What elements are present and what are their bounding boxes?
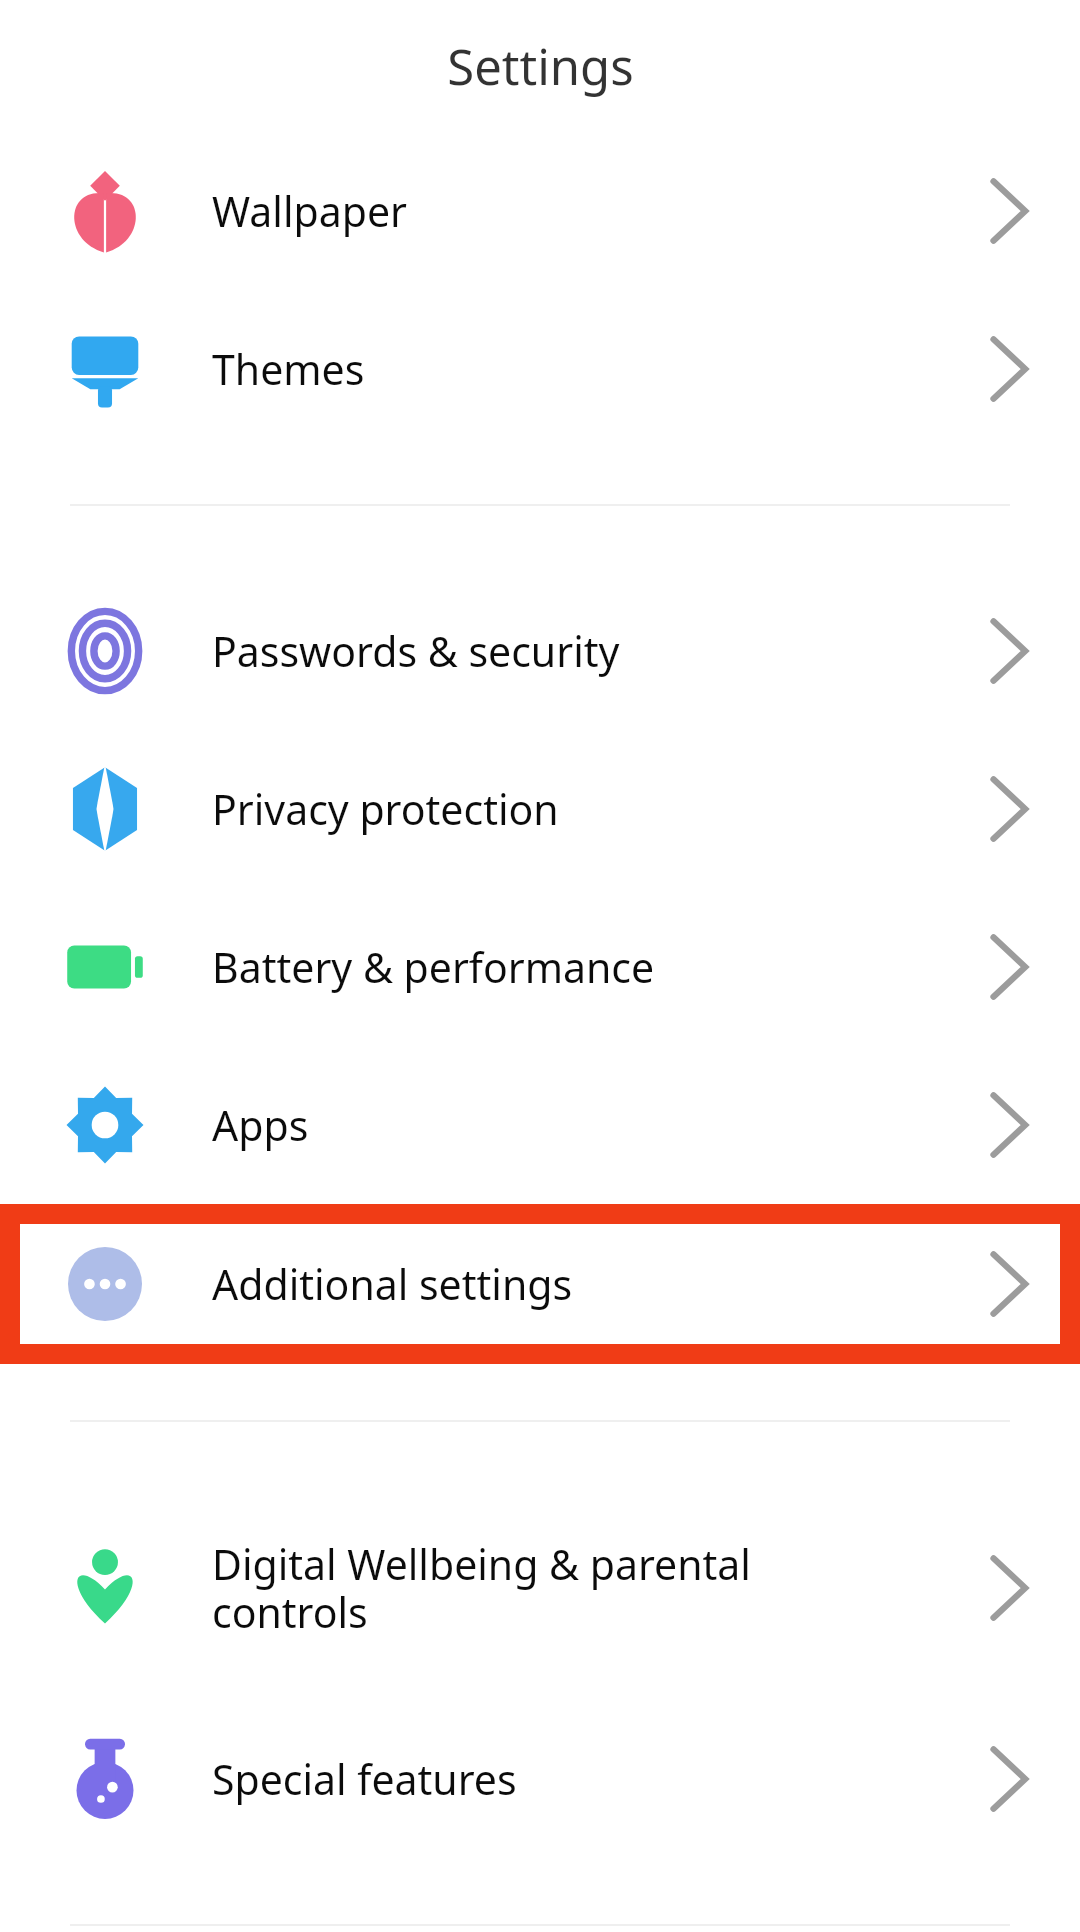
button[interactable]: Additional settings [0, 1204, 1080, 1364]
button[interactable]: Wallpaper [0, 132, 1080, 290]
button[interactable]: Digital Wellbeing & parental controls [0, 1502, 1080, 1674]
button[interactable]: Passwords & security [0, 572, 1080, 730]
staticText: Digital Wellbeing & parental controls [212, 1536, 751, 1640]
staticText: Special features [212, 1751, 517, 1807]
staticText: Settings [447, 33, 634, 100]
staticText: Battery & performance [212, 939, 655, 995]
button[interactable]: Apps [0, 1046, 1080, 1204]
staticText: Additional settings [212, 1256, 573, 1312]
button[interactable]: Privacy protection [0, 730, 1080, 888]
button[interactable]: Special features [0, 1700, 1080, 1858]
staticText: Wallpaper [212, 183, 407, 239]
staticText: Passwords & security [212, 623, 620, 679]
button[interactable]: Battery & performance [0, 888, 1080, 1046]
staticText: Themes [212, 341, 365, 397]
staticText: Apps [212, 1097, 309, 1153]
staticText: Privacy protection [212, 781, 559, 837]
button[interactable]: Themes [0, 290, 1080, 448]
